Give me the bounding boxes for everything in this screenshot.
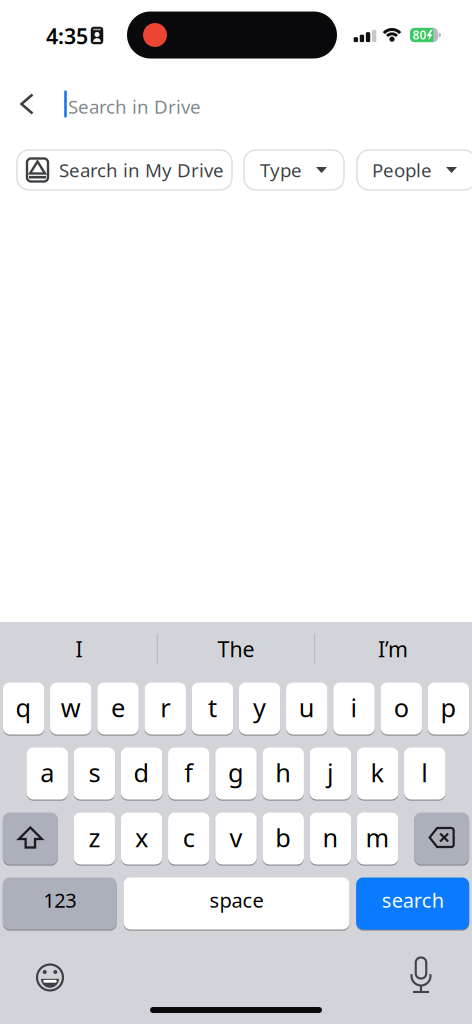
button[interactable]: l — [404, 747, 445, 800]
button[interactable] — [9, 83, 45, 125]
button[interactable]: o — [380, 682, 422, 735]
button[interactable]: i — [333, 682, 375, 735]
staticText: a — [40, 756, 54, 789]
button[interactable]: t — [192, 682, 233, 735]
button[interactable] — [30, 957, 70, 997]
staticText: Search in Drive — [68, 94, 201, 119]
button[interactable]: p — [428, 682, 469, 735]
button[interactable]: b — [262, 812, 304, 865]
staticText: Search in My Drive — [59, 158, 224, 182]
button[interactable]: f — [168, 747, 210, 800]
button[interactable]: n — [310, 812, 351, 865]
button[interactable]: I’m — [314, 620, 471, 682]
staticText: m — [366, 821, 390, 854]
staticText: j — [327, 756, 334, 789]
staticText: k — [371, 756, 385, 789]
button[interactable]: I — [0, 620, 157, 682]
button[interactable]: x — [121, 812, 162, 865]
staticText: 80 — [413, 27, 427, 43]
button[interactable]: w — [50, 682, 91, 735]
staticText: c — [183, 821, 195, 854]
button[interactable]: Type — [244, 150, 344, 190]
button[interactable]: y — [239, 682, 280, 735]
staticText: w — [61, 691, 81, 724]
staticText: p — [440, 691, 456, 724]
button[interactable]: q — [3, 682, 44, 735]
staticText: q — [16, 691, 32, 724]
staticText: I — [75, 635, 82, 663]
staticText: h — [275, 756, 291, 789]
button[interactable]: r — [144, 682, 186, 735]
staticText: i — [350, 691, 357, 724]
button[interactable]: a — [26, 747, 68, 800]
button[interactable]: m — [357, 812, 398, 865]
button[interactable]: g — [215, 747, 257, 800]
button[interactable]: search — [356, 877, 469, 930]
staticText: search — [382, 887, 444, 913]
staticText: l — [421, 756, 428, 789]
button[interactable] — [403, 953, 439, 999]
button[interactable]: Search in My Drive — [17, 150, 232, 190]
staticText: 123 — [43, 887, 76, 913]
button[interactable]: v — [215, 812, 257, 865]
button[interactable]: k — [357, 747, 398, 800]
staticText: z — [88, 821, 100, 854]
button[interactable] — [3, 812, 58, 865]
staticText: o — [394, 691, 409, 724]
button[interactable]: u — [286, 682, 327, 735]
button[interactable]: s — [74, 747, 115, 800]
staticText: I’m — [378, 635, 408, 663]
button[interactable]: e — [97, 682, 139, 735]
staticText: f — [184, 756, 193, 789]
button[interactable]: d — [121, 747, 162, 800]
staticText: g — [228, 756, 244, 789]
staticText: r — [160, 691, 170, 724]
button[interactable]: The — [157, 620, 314, 682]
staticText: People — [372, 158, 432, 182]
staticText: x — [135, 821, 148, 854]
staticText: e — [111, 691, 125, 724]
button[interactable]: c — [168, 812, 210, 865]
staticText: space — [209, 887, 263, 913]
button[interactable]: People — [357, 150, 472, 190]
button[interactable]: j — [310, 747, 351, 800]
staticText: b — [275, 821, 291, 854]
staticText: 4:35 — [46, 22, 88, 50]
staticText: The — [217, 635, 254, 663]
button[interactable]: h — [262, 747, 304, 800]
staticText: n — [322, 821, 338, 854]
button[interactable]: z — [74, 812, 115, 865]
staticText: v — [229, 821, 242, 854]
staticText: y — [253, 691, 266, 724]
staticText: d — [134, 756, 150, 789]
button[interactable]: space — [123, 877, 349, 930]
staticText: s — [88, 756, 100, 789]
staticText: Type — [260, 158, 302, 182]
staticText: t — [208, 691, 217, 724]
button[interactable]: 123 — [3, 877, 117, 930]
staticText: u — [299, 691, 315, 724]
button[interactable] — [414, 812, 469, 865]
